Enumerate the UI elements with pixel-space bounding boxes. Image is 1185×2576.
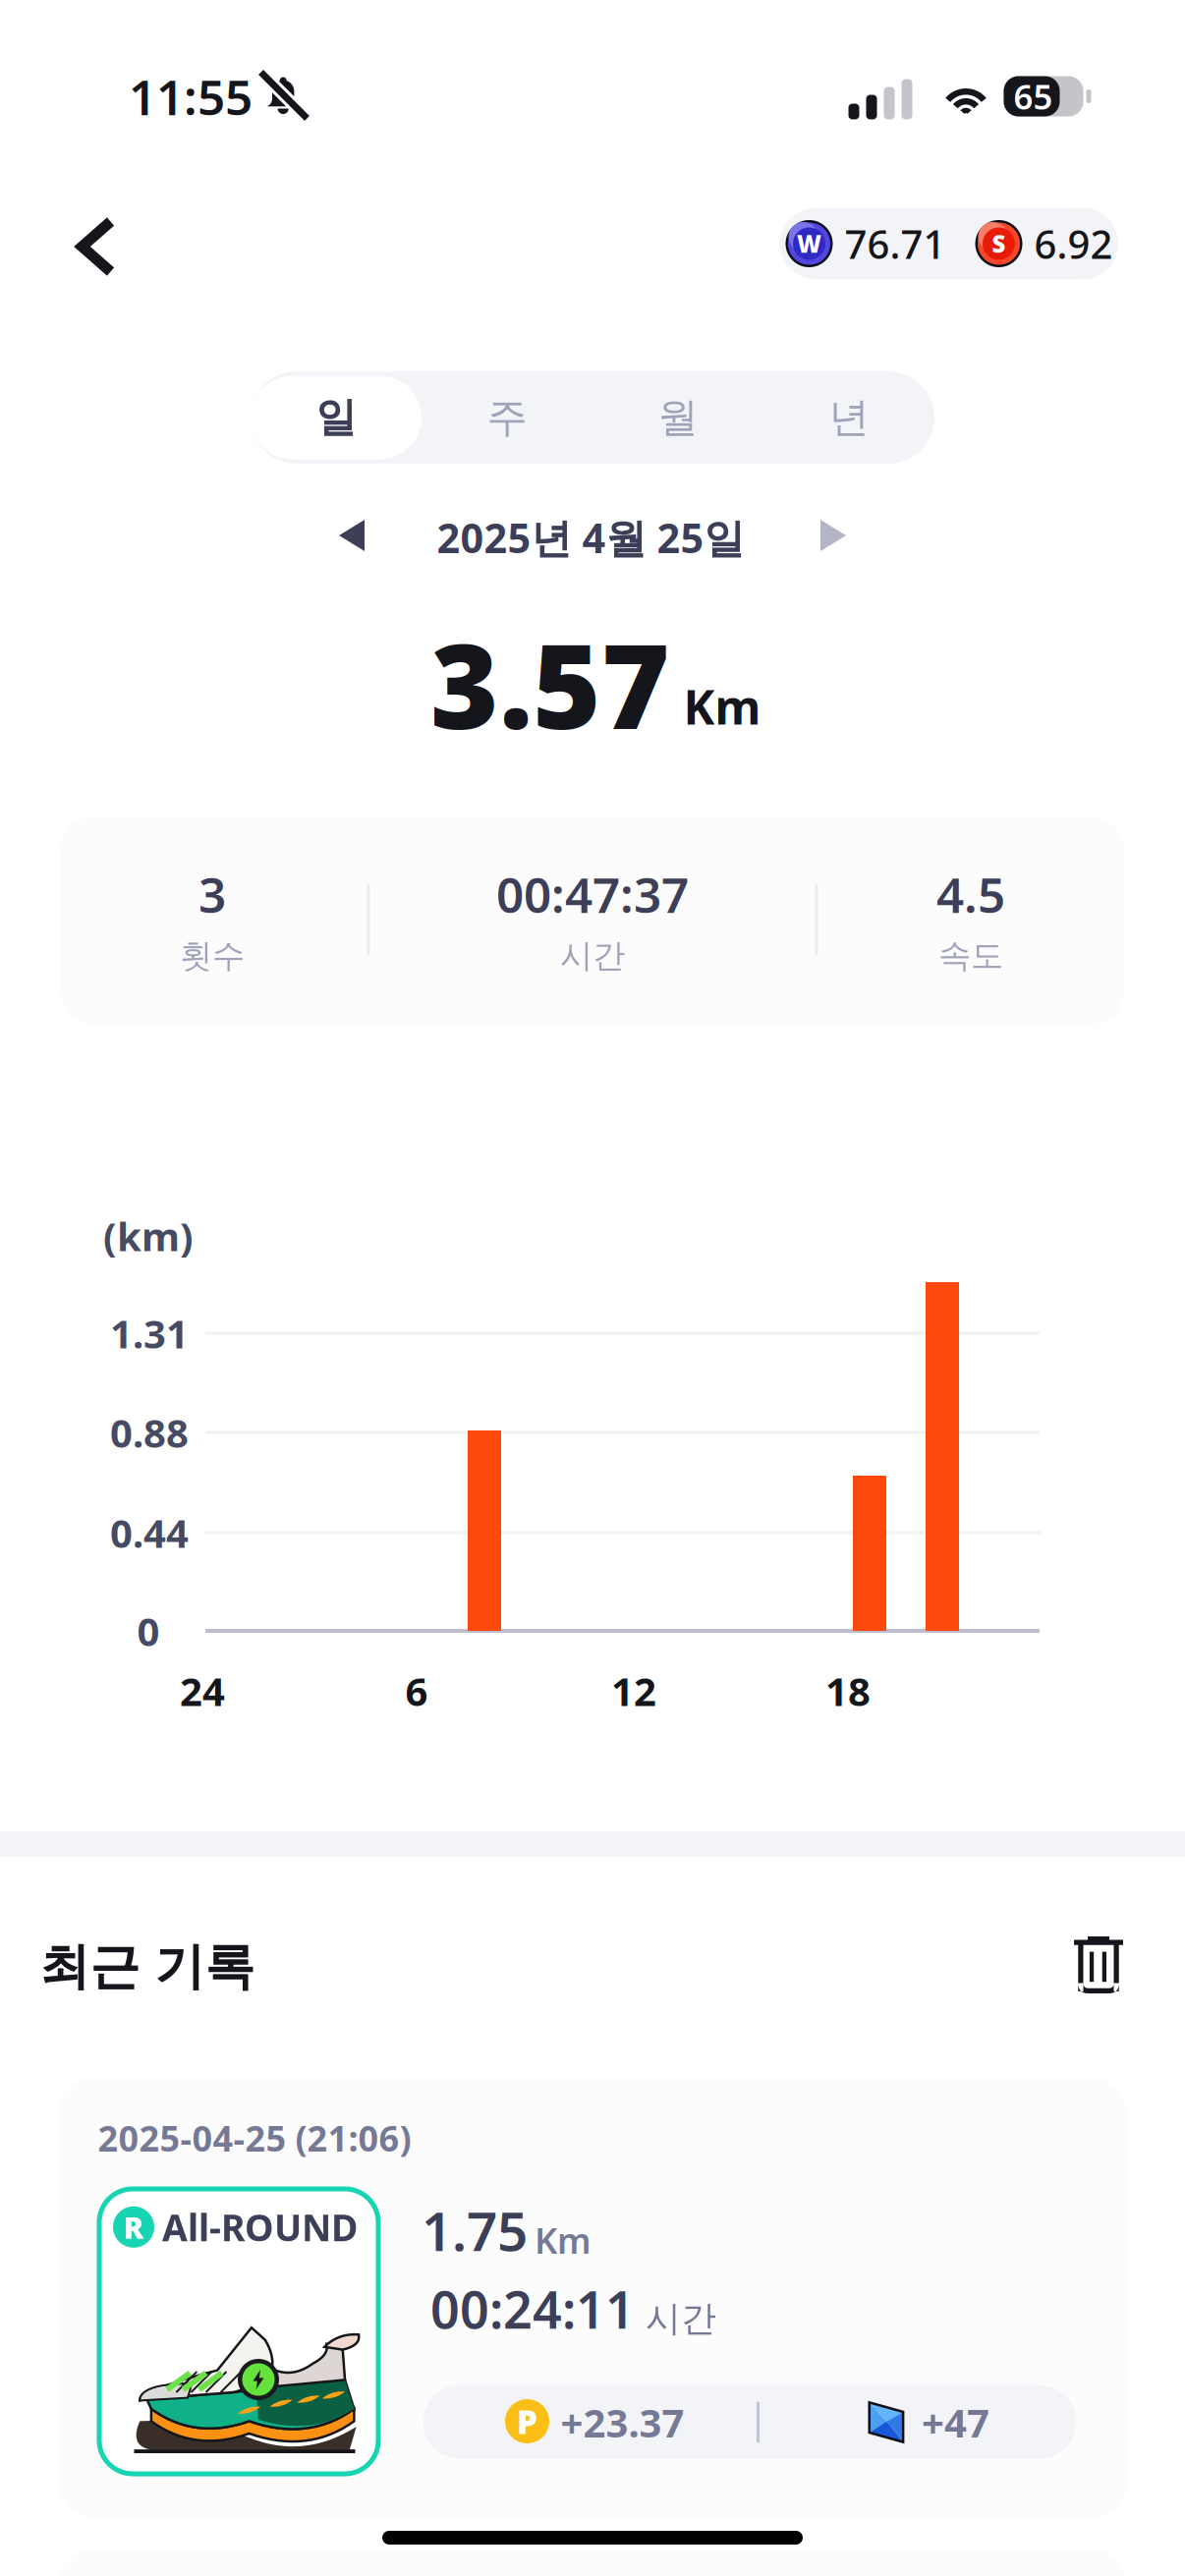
staticText: 년 (829, 393, 869, 442)
staticText: 6 (405, 1665, 428, 1717)
staticText: +23.37 (561, 2396, 684, 2448)
staticText: 0.88 (110, 1406, 189, 1458)
staticText: 0 (137, 1605, 160, 1657)
staticText: 최근 기록 (40, 1936, 255, 1997)
staticText: 3 (198, 862, 226, 926)
staticText: 76.71 (845, 218, 946, 270)
staticText: 1.31 (110, 1307, 189, 1359)
staticText: 11:55 (129, 64, 253, 128)
staticText: 주 (487, 393, 527, 442)
button[interactable]: 주 (422, 371, 592, 464)
staticText: Km (535, 2217, 592, 2263)
staticText: 2025년 4월 25일 (437, 510, 744, 564)
staticText: 시간 (560, 936, 625, 976)
staticText: 24 (180, 1665, 225, 1717)
staticText: 3.57 (430, 606, 670, 761)
staticText: 일 (316, 393, 356, 442)
staticText: W (797, 228, 821, 259)
button[interactable]: W (780, 208, 1118, 280)
button[interactable]: 년 (763, 371, 934, 464)
staticText: All-ROUND (162, 2203, 358, 2251)
staticText: 시간 (646, 2297, 716, 2340)
staticText: 12 (611, 1665, 656, 1717)
staticText: (km) (103, 1210, 194, 1262)
button[interactable]: 일 (251, 371, 422, 464)
staticText: R (123, 2207, 144, 2247)
button[interactable]: Next day (795, 494, 872, 577)
staticText: P (517, 2400, 537, 2443)
button[interactable]: 월 (592, 371, 763, 464)
staticText: 월 (658, 393, 698, 442)
staticText: 4.5 (936, 862, 1005, 926)
staticText: 1.75 (422, 2195, 528, 2266)
staticText: 00:47:37 (496, 862, 689, 926)
staticText: 6.92 (1034, 218, 1113, 270)
button[interactable]: Previous day (313, 494, 390, 577)
staticText: 속도 (938, 936, 1003, 976)
staticText: 18 (825, 1665, 871, 1717)
staticText: 2025-04-25 (21:06) (98, 2114, 411, 2161)
staticText: 횟수 (180, 936, 245, 976)
staticText: Km (683, 675, 761, 738)
staticText: +47 (922, 2396, 989, 2448)
staticText: 00:24:11 (430, 2275, 635, 2343)
staticText: S (992, 228, 1006, 259)
button[interactable]: Back (55, 194, 138, 299)
staticText: 0.44 (110, 1506, 189, 1559)
button[interactable]: Delete records (1056, 1919, 1141, 2011)
staticText: 65 (1014, 74, 1053, 119)
